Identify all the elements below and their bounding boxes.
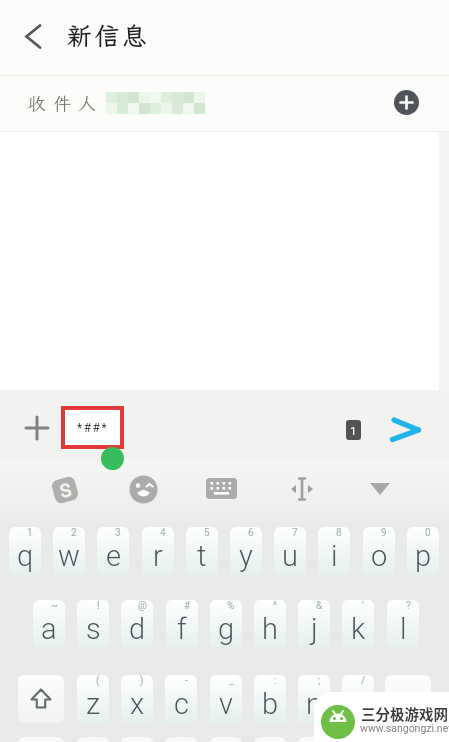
staticText: y — [239, 539, 253, 573]
staticText: @ — [138, 600, 147, 612]
staticText: : — [274, 675, 277, 687]
staticText: S — [58, 479, 74, 502]
button[interactable] — [385, 675, 431, 723]
button[interactable]: ? — [387, 600, 419, 649]
button[interactable]: 4 — [142, 527, 174, 576]
staticText: g — [218, 612, 235, 646]
button[interactable]: ) — [121, 675, 153, 724]
staticText: ; — [318, 675, 321, 687]
button[interactable] — [18, 675, 64, 723]
staticText: w — [58, 539, 80, 573]
staticText: ' — [362, 600, 364, 612]
button[interactable]: @ — [121, 600, 153, 649]
staticText: & — [316, 600, 323, 612]
button[interactable]: 8 — [318, 527, 350, 576]
staticText: 1 — [27, 527, 33, 539]
staticText: 8 — [336, 527, 342, 539]
button[interactable]: : — [254, 675, 286, 724]
staticText: a — [41, 612, 57, 646]
staticText: 收件人 — [28, 91, 103, 115]
staticText: i — [331, 539, 338, 573]
staticText: e — [106, 539, 121, 573]
staticText: t — [197, 539, 207, 573]
staticText: m — [345, 687, 371, 721]
staticText: r — [153, 539, 163, 573]
button[interactable]: ' — [342, 600, 374, 649]
button[interactable]: 7 — [274, 527, 306, 576]
staticText: z — [86, 687, 101, 721]
staticText: 9 — [381, 527, 387, 539]
button[interactable] — [394, 90, 419, 115]
staticText: u — [282, 539, 298, 573]
button[interactable]: & — [298, 600, 330, 649]
staticText: 4 — [160, 527, 166, 539]
staticText: p — [415, 539, 432, 573]
staticText: b — [262, 687, 279, 721]
staticText: _ — [229, 675, 234, 687]
staticText: 0 — [425, 527, 431, 539]
staticText: 6 — [248, 527, 254, 539]
staticText: k — [351, 612, 366, 646]
staticText: n — [306, 687, 322, 721]
button[interactable]: - — [165, 675, 197, 724]
button[interactable] — [22, 413, 52, 443]
staticText: % — [227, 600, 235, 612]
staticText: - — [185, 675, 188, 687]
staticText: *##* — [77, 421, 109, 435]
button[interactable]: 1 — [9, 527, 41, 576]
staticText: o — [371, 539, 388, 573]
staticText: 三分极游戏网 — [361, 703, 448, 724]
staticText: 1 — [350, 424, 357, 437]
button[interactable] — [389, 414, 423, 446]
button[interactable]: S — [51, 476, 78, 503]
staticText: ^ — [273, 600, 278, 612]
staticText: c — [174, 687, 189, 721]
button[interactable]: ~ — [33, 600, 65, 649]
staticText: j — [311, 612, 318, 646]
button[interactable]: 9 — [363, 527, 395, 576]
staticText: / — [361, 675, 366, 687]
button[interactable] — [129, 475, 158, 504]
staticText: f — [177, 612, 187, 646]
button[interactable]: 0 — [407, 527, 439, 576]
staticText: 5 — [204, 527, 210, 539]
staticText: s — [86, 612, 101, 646]
button[interactable]: 3 — [97, 527, 129, 576]
staticText: ( — [96, 675, 100, 687]
staticText: h — [262, 612, 278, 646]
button[interactable]: ; — [298, 675, 330, 724]
staticText: 新信息 — [67, 19, 150, 52]
staticText: x — [130, 687, 145, 721]
staticText: ) — [140, 675, 144, 687]
button[interactable]: # — [166, 600, 198, 649]
staticText: ~ — [51, 600, 58, 612]
button[interactable] — [369, 481, 391, 498]
button[interactable] — [206, 478, 237, 499]
button[interactable]: ^ — [254, 600, 286, 649]
staticText: l — [400, 612, 407, 646]
button[interactable]: ( — [77, 675, 109, 724]
button[interactable] — [0, 76, 449, 131]
button[interactable]: 6 — [230, 527, 262, 576]
button[interactable]: / — [342, 675, 374, 724]
button[interactable]: _ — [210, 675, 242, 724]
button[interactable] — [288, 476, 316, 502]
staticText: v — [219, 687, 233, 721]
button[interactable] — [16, 24, 48, 50]
button[interactable]: % — [210, 600, 242, 649]
staticText: ? — [406, 600, 411, 612]
staticText: q — [17, 539, 34, 573]
staticText: 3 — [115, 527, 121, 539]
staticText: d — [129, 612, 146, 646]
staticText: 7 — [292, 527, 298, 539]
staticText: www.sangongzi.net — [360, 722, 449, 734]
button[interactable]: 2 — [53, 527, 85, 576]
staticText: 2 — [71, 527, 77, 539]
staticText: ! — [97, 600, 100, 612]
button[interactable]: 5 — [186, 527, 218, 576]
staticText: # — [184, 600, 191, 612]
button[interactable]: *##* — [61, 406, 124, 449]
button[interactable]: ! — [77, 600, 109, 649]
